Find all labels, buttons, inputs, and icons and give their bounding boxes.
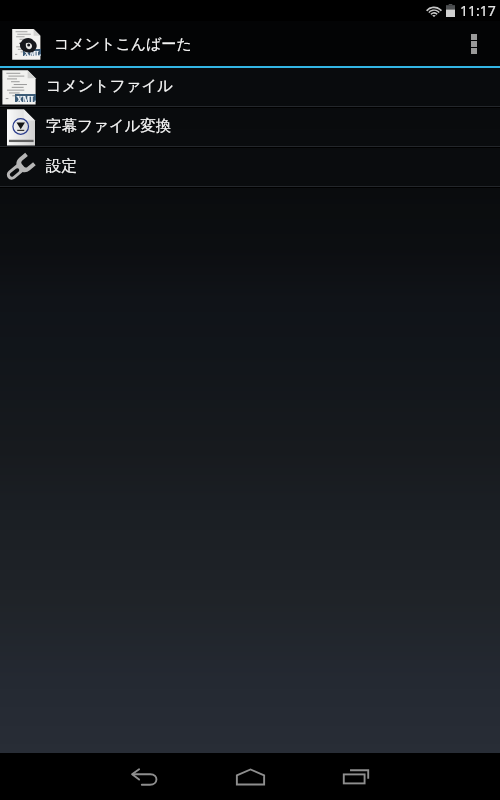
button[interactable]: Back — [91, 753, 197, 800]
staticText: コメントこんばーた — [54, 35, 192, 54]
button[interactable]: 設定 — [0, 148, 500, 186]
staticText: XML — [24, 49, 41, 56]
staticText: コメントファイル — [46, 76, 173, 96]
staticText: 設定 — [46, 156, 77, 176]
staticText: 11:17 — [460, 1, 496, 20]
button[interactable]: More options — [447, 21, 500, 66]
button[interactable]: 字幕ファイル変換 — [0, 108, 500, 146]
button[interactable]: Home — [197, 753, 303, 800]
staticText: 字幕ファイル変換 — [46, 116, 172, 136]
button[interactable]: Recent apps — [303, 753, 409, 800]
staticText: XML — [16, 94, 36, 102]
button[interactable]: XML — [0, 68, 500, 106]
